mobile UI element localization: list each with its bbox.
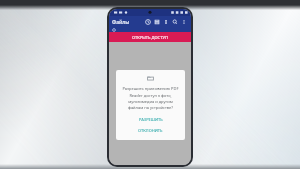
- button[interactable]: Storage: [161, 16, 170, 28]
- button[interactable]: Файлы: [112, 19, 130, 26]
- button[interactable]: ОТКЛОНИТЬ: [121, 126, 180, 135]
- other: Files permission: [147, 75, 154, 82]
- other: Back: [112, 28, 116, 32]
- button[interactable]: ОТКРЫТЬ ДОСТУП: [109, 32, 191, 42]
- button[interactable]: Search: [170, 16, 179, 28]
- staticText: ОТКЛОНИТЬ: [138, 128, 163, 133]
- button[interactable]: More options: [179, 16, 188, 28]
- staticText: ОТКРЫТЬ ДОСТУП: [132, 35, 168, 40]
- button[interactable]: View mode: [152, 16, 161, 28]
- button[interactable]: РАЗРЕШИТЬ: [121, 115, 180, 124]
- staticText: Разрешить приложению PDF Reader доступ к…: [121, 86, 180, 110]
- staticText: РАЗРЕШИТЬ: [139, 117, 163, 122]
- button[interactable]: Recent: [143, 16, 152, 28]
